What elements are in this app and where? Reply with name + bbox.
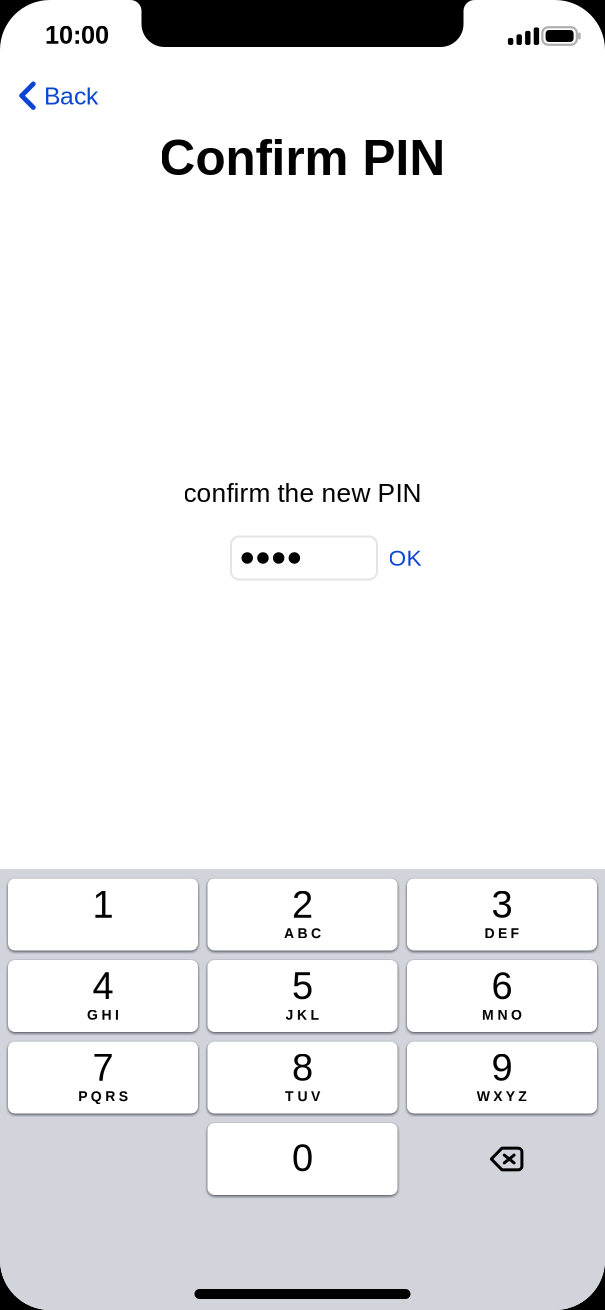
staticText: L	[310, 1007, 319, 1023]
button[interactable]: 0	[207, 1123, 397, 1195]
staticText: T	[285, 1089, 294, 1104]
staticText: 7	[92, 1046, 113, 1089]
staticText: Z	[518, 1089, 527, 1104]
staticText: X	[493, 1089, 502, 1104]
button[interactable]: 6	[407, 960, 597, 1032]
staticText: V	[311, 1089, 320, 1104]
staticText: Confirm PIN	[159, 130, 445, 185]
staticText: 4	[92, 965, 113, 1007]
staticText: N	[497, 1007, 507, 1023]
staticText: A	[284, 926, 294, 941]
staticText: I	[115, 1007, 119, 1023]
staticText: 3	[491, 883, 512, 926]
staticText: B	[297, 926, 307, 941]
staticText: Back	[44, 82, 98, 110]
staticText: 0	[292, 1137, 313, 1179]
button[interactable]: 2	[207, 878, 397, 950]
button[interactable]: PIN entry field	[231, 536, 377, 579]
staticText: 2	[292, 883, 313, 926]
button[interactable]: 7	[8, 1041, 198, 1113]
staticText: H	[101, 1007, 111, 1023]
button[interactable]: 8	[207, 1041, 397, 1113]
staticText: 9	[491, 1046, 512, 1089]
button[interactable]: 3	[407, 878, 597, 950]
staticText: 10:00	[45, 21, 109, 49]
staticText: 6	[491, 965, 512, 1007]
button[interactable]: 1	[8, 878, 198, 950]
staticText: C	[311, 926, 321, 941]
staticText: 1	[92, 883, 113, 926]
staticText: P	[78, 1089, 87, 1104]
staticText: R	[105, 1089, 115, 1104]
staticText: 8	[292, 1046, 313, 1089]
staticText: D	[484, 926, 494, 941]
staticText: J	[285, 1007, 293, 1023]
button[interactable]: 9	[407, 1041, 597, 1113]
staticText: W	[477, 1089, 490, 1104]
button[interactable]: 4	[8, 960, 198, 1032]
staticText: E	[498, 926, 507, 941]
staticText: K	[297, 1007, 307, 1023]
staticText: 5	[292, 965, 313, 1007]
staticText: U	[297, 1089, 307, 1104]
staticText: F	[510, 926, 519, 941]
button[interactable]: OK	[376, 536, 434, 579]
staticText: OK	[388, 545, 421, 571]
button[interactable]: Delete	[407, 1123, 597, 1195]
staticText: S	[119, 1089, 128, 1104]
staticText: M	[482, 1007, 494, 1023]
button[interactable]: Back	[0, 70, 112, 121]
staticText: Q	[91, 1089, 102, 1104]
staticText: O	[511, 1007, 522, 1023]
staticText: Y	[506, 1089, 515, 1104]
button[interactable]: 5	[207, 960, 397, 1032]
staticText: G	[87, 1007, 98, 1023]
staticText: confirm the new PIN	[183, 478, 421, 508]
